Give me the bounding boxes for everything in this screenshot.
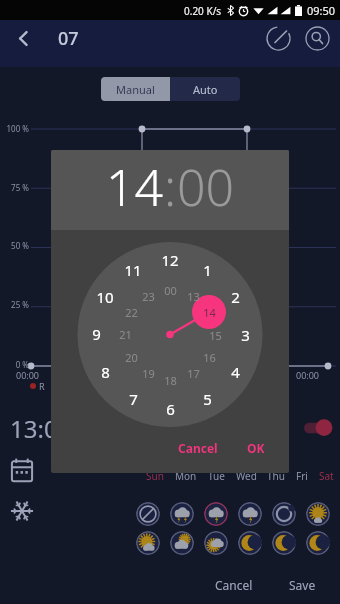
button[interactable]: Weather option 6 [306,502,330,526]
staticText: 21 [119,327,132,342]
staticText: OK [247,440,265,456]
staticText: 3 [241,325,250,345]
button[interactable]: Mon [175,469,197,483]
staticText: 00 [164,283,177,298]
button[interactable]: Weather option 5 [272,502,296,526]
staticText: Sun [146,469,164,483]
staticText: : [164,153,177,221]
staticText: 16 [203,350,216,365]
button[interactable]: Weather option 2 [170,502,194,526]
button[interactable]: Weather option 10 [238,531,262,555]
button[interactable]: Weather option 4 [238,502,262,526]
button[interactable]: Cancel [205,573,263,597]
button[interactable]: 00 [177,153,235,221]
button[interactable]: Cancel [170,434,226,462]
button[interactable]: Sat [319,469,334,483]
staticText: 5 [203,389,212,409]
button[interactable]: Save [279,573,326,597]
staticText: 50 % [11,240,29,251]
staticText: Sat [319,469,334,483]
staticText: Auto [193,82,218,97]
staticText: 00 [177,153,235,221]
staticText: 11 [124,260,142,280]
staticText: 9 [92,324,101,344]
staticText: 14 [203,305,216,320]
button[interactable]: Thu [267,469,285,483]
staticText: 7 [129,389,138,409]
staticText: 17 [187,366,200,381]
staticText: 23 [142,289,155,304]
staticText: Manual [116,82,155,97]
button[interactable]: Weather option 3 [204,502,228,526]
staticText: Fri [296,469,308,483]
staticText: 15 [209,328,222,343]
staticText: Tue [208,469,225,483]
button[interactable]: Weather option 11 [272,531,296,555]
staticText: 6 [166,399,175,419]
button[interactable]: Wed [236,469,257,483]
button[interactable]: Enabled toggle [302,418,334,438]
staticText: 12 [161,250,179,270]
staticText: Cancel [215,577,253,593]
button[interactable]: Search [299,20,335,56]
staticText: 2 [231,287,240,307]
staticText: 07 [58,26,79,51]
button[interactable]: Weather option 8 [170,531,194,555]
button[interactable]: Weather option 7 [136,531,160,555]
staticText: 4 [231,362,240,382]
staticText: 19 [142,366,155,381]
staticText: 0.20 K/s [184,4,222,18]
button[interactable]: Manual [101,77,170,101]
button[interactable]: Calendar [10,457,34,484]
button[interactable]: Sun [146,469,164,483]
button[interactable]: 14 [106,153,164,221]
button[interactable]: Fri [296,469,308,483]
button[interactable]: Auto [170,77,240,101]
button[interactable]: Back [8,23,38,53]
button[interactable]: Weather option 1 [136,502,160,526]
staticText: 13:00 [10,412,72,445]
staticText: 00:00 [296,369,320,381]
staticText: Save [289,577,316,593]
staticText: Cancel [178,440,218,456]
button[interactable]: Edit [260,20,296,56]
staticText: 22 [125,305,138,320]
staticText: 09:50 [307,3,336,18]
staticText: Thu [267,469,285,483]
staticText: 100 % [6,123,29,134]
staticText: 25 % [11,299,29,310]
staticText: 13 [187,289,200,304]
button[interactable]: OK [239,434,273,462]
staticText: R [39,380,45,392]
staticText: Wed [236,469,257,483]
staticText: 1 [203,260,212,280]
staticText: 20 [125,350,138,365]
staticText: 14 [106,153,164,221]
staticText: 8 [101,362,110,382]
staticText: 00:00 [16,369,40,381]
staticText: 0 % [15,359,29,370]
button[interactable]: Tue [208,469,225,483]
staticText: Mon [175,469,197,483]
staticText: 10 [96,287,114,307]
button[interactable]: Weather option 12 [306,531,330,555]
staticText: 18 [164,373,177,388]
staticText: 75 % [11,182,29,193]
button[interactable]: Weather option 9 [204,531,228,555]
button[interactable]: Snowflake [10,499,34,523]
